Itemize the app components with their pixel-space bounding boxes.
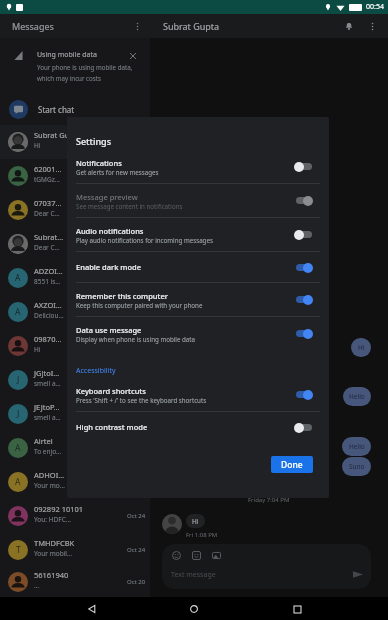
- button[interactable]: [294, 389, 313, 400]
- staticText: Hi: [34, 345, 41, 354]
- staticText: Hi: [358, 343, 365, 352]
- staticText: J: [17, 408, 20, 420]
- staticText: You: HDFC…: [34, 515, 71, 524]
- button[interactable]: Subrat Gupta: [0, 125, 150, 159]
- button[interactable]: Dismiss: [127, 50, 138, 61]
- button[interactable]: Remember this computer: [67, 283, 329, 316]
- button[interactable]: Send image: [191, 550, 202, 561]
- staticText: 09870…: [34, 334, 62, 344]
- button[interactable]: High contrast mode: [67, 412, 329, 442]
- button[interactable]: 56161940: [0, 567, 150, 597]
- staticText: JGJtoI…: [34, 368, 60, 378]
- staticText: smell a…: [34, 379, 61, 388]
- staticText: Audio notifications: [76, 226, 144, 236]
- button[interactable]: A: [0, 431, 150, 465]
- staticText: Accessibility: [76, 366, 116, 376]
- button[interactable]: Gallery: [211, 550, 222, 561]
- button[interactable]: T: [0, 533, 150, 567]
- button[interactable]: [294, 422, 313, 433]
- staticText: See message content in notifications: [76, 202, 183, 210]
- staticText: Dear C…: [34, 243, 60, 252]
- staticText: T: [16, 544, 21, 556]
- button[interactable]: [294, 294, 313, 305]
- staticText: A: [15, 476, 21, 488]
- staticText: smell a…: [34, 413, 61, 422]
- button[interactable]: Start chat: [0, 93, 150, 125]
- staticText: Subrat Gupta: [34, 130, 81, 140]
- button[interactable]: Message preview: [67, 184, 329, 217]
- button[interactable]: 09870…: [0, 329, 150, 363]
- staticText: Hi: [34, 141, 41, 150]
- staticText: 00:54: [366, 2, 384, 12]
- staticText: A: [15, 272, 21, 284]
- staticText: 07037…: [34, 198, 62, 208]
- button[interactable]: Enable dark mode: [67, 252, 329, 282]
- staticText: Using mobile data: [37, 50, 97, 60]
- button[interactable]: Notifications: [341, 18, 357, 34]
- staticText: Done: [281, 459, 303, 471]
- staticText: Start chat: [38, 104, 75, 115]
- staticText: TMHDFCBK: [34, 538, 75, 548]
- staticText: tGMGz…: [34, 175, 60, 184]
- button[interactable]: Send: [351, 568, 364, 581]
- button[interactable]: More options: [364, 18, 380, 34]
- button[interactable]: 092892 10101: [0, 499, 150, 533]
- staticText: 8551 is…: [34, 277, 61, 286]
- staticText: Oct 24: [127, 512, 146, 520]
- button[interactable]: Audio notifications: [67, 218, 329, 251]
- button[interactable]: J: [0, 363, 150, 397]
- staticText: Remember this computer: [76, 291, 168, 301]
- button[interactable]: J: [0, 397, 150, 431]
- staticText: Your mo…: [34, 481, 65, 490]
- staticText: Play audio notifications for incoming me…: [76, 236, 213, 244]
- button[interactable]: Data use message: [67, 317, 329, 350]
- staticText: Dear C…: [34, 209, 60, 218]
- button[interactable]: More options: [129, 18, 145, 34]
- staticText: High contrast mode: [76, 422, 148, 432]
- button[interactable]: A: [0, 465, 150, 499]
- staticText: Subrat Gupta: [163, 20, 220, 32]
- staticText: Your mobil…: [34, 549, 73, 558]
- staticText: Fri 1:08 PM: [186, 531, 218, 539]
- staticText: Hi: [192, 517, 199, 526]
- staticText: Oct 20: [127, 578, 146, 586]
- staticText: 092892 10101: [34, 504, 84, 514]
- button[interactable]: Keyboard shortcuts: [67, 378, 329, 411]
- staticText: Subrat…: [34, 232, 64, 242]
- button[interactable]: [294, 328, 313, 339]
- staticText: Messages: [12, 20, 54, 32]
- staticText: Suno: [349, 462, 365, 471]
- button[interactable]: [294, 195, 313, 206]
- button[interactable]: Emoji: [171, 550, 182, 561]
- staticText: Enable dark mode: [76, 262, 141, 272]
- button[interactable]: Back: [81, 598, 103, 620]
- staticText: AXZOI…: [34, 300, 62, 310]
- button[interactable]: Recents: [286, 598, 308, 620]
- staticText: …: [34, 581, 40, 590]
- button[interactable]: Done: [271, 456, 313, 473]
- button[interactable]: 62001…: [0, 159, 150, 193]
- button[interactable]: Home: [183, 598, 205, 620]
- button[interactable]: 07037…: [0, 193, 150, 227]
- staticText: JEJtoP…: [34, 402, 60, 412]
- button[interactable]: [294, 229, 313, 240]
- button[interactable]: Subrat…: [0, 227, 150, 261]
- button[interactable]: A: [0, 295, 150, 329]
- staticText: Hello: [349, 392, 365, 401]
- staticText: ADHOI…: [34, 470, 65, 480]
- button[interactable]: A: [0, 261, 150, 295]
- button[interactable]: [294, 161, 313, 172]
- staticText: A: [15, 442, 21, 454]
- staticText: Display when phone is using mobile data: [76, 335, 196, 343]
- staticText: Hello: [349, 442, 365, 451]
- staticText: Data use message: [76, 325, 142, 335]
- staticText: Notifications: [76, 158, 122, 168]
- button[interactable]: [294, 262, 313, 273]
- staticText: Keep this computer paired with your phon…: [76, 301, 203, 309]
- staticText: Keyboard shortcuts: [76, 386, 146, 396]
- staticText: Your phone is using mobile data,: [37, 63, 127, 71]
- staticText: ADZOI…: [34, 266, 63, 276]
- button[interactable]: Notifications: [67, 150, 329, 183]
- staticText: Airtel: [34, 436, 53, 446]
- staticText: Get alerts for new messages: [76, 168, 159, 176]
